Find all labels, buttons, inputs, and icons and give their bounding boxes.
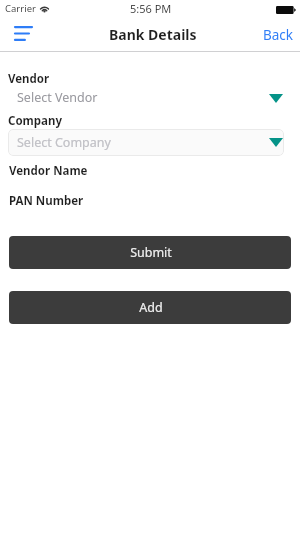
- button[interactable]: Select Company: [8, 129, 284, 156]
- button[interactable]: Add: [9, 291, 291, 324]
- staticText: Company: [8, 113, 62, 129]
- staticText: PAN Number: [9, 193, 84, 209]
- staticText: Select Vendor: [17, 89, 98, 106]
- button[interactable]: Menu: [9, 20, 37, 46]
- button[interactable]: Submit: [9, 236, 291, 269]
- staticText: Submit: [130, 244, 172, 261]
- staticText: Add: [139, 299, 163, 316]
- button[interactable]: Back: [261, 22, 296, 50]
- staticText: Carrier: [5, 2, 36, 15]
- staticText: Vendor Name: [9, 163, 88, 179]
- staticText: 5:56 PM: [130, 1, 172, 16]
- staticText: Select Company: [17, 134, 111, 151]
- button[interactable]: Select Vendor: [8, 88, 283, 107]
- staticText: Bank Details: [109, 25, 197, 44]
- staticText: Vendor: [8, 71, 50, 87]
- staticText: Back: [263, 26, 294, 44]
